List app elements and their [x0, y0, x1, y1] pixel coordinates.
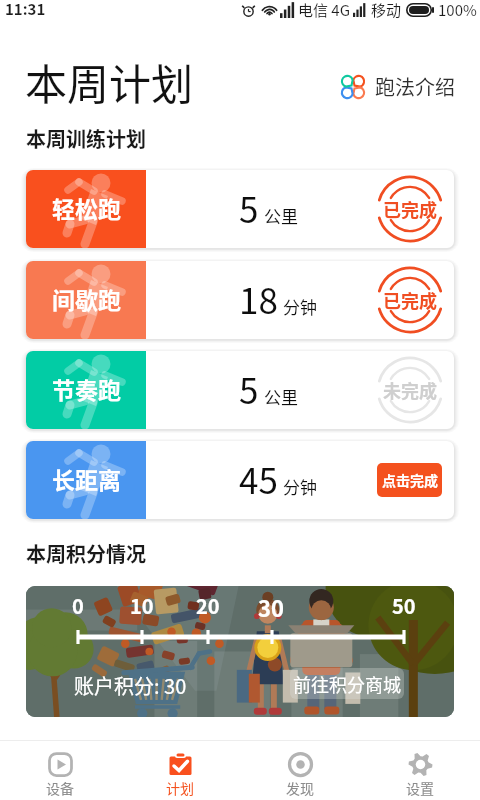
staticText: 分钟: [283, 474, 317, 499]
staticText: 计划: [166, 778, 194, 798]
staticText: 本周积分情况: [26, 539, 146, 568]
staticText: 轻松跑: [52, 191, 121, 224]
staticText: 公里: [264, 384, 298, 409]
button[interactable]: 跑法介绍: [339, 72, 455, 101]
staticText: 公里: [264, 203, 298, 228]
staticText: 间歇跑: [52, 282, 121, 315]
button[interactable]: 发现: [240, 741, 360, 800]
staticText: 分钟: [283, 294, 317, 319]
button[interactable]: 计划: [120, 741, 240, 800]
staticText: 节奏跑: [52, 372, 121, 405]
button[interactable]: 长距离: [26, 441, 454, 519]
staticText: 长距离: [52, 462, 121, 495]
staticText: 点击完成: [382, 470, 438, 490]
button[interactable]: 间歇跑: [26, 261, 454, 339]
staticText: 电信 4G: [298, 0, 351, 21]
staticText: 发现: [286, 778, 314, 798]
button[interactable]: 轻松跑: [26, 170, 454, 248]
staticText: 跑法介绍: [375, 72, 455, 101]
staticText: 前往积分商城: [293, 671, 401, 697]
staticText: 100%: [438, 0, 477, 21]
button[interactable]: 0: [26, 586, 454, 717]
staticText: 移动: [371, 0, 402, 21]
button[interactable]: 设备: [0, 741, 120, 800]
staticText: 已完成: [383, 196, 437, 222]
staticText: 本周计划: [25, 51, 194, 112]
staticText: 20: [196, 591, 220, 620]
staticText: 5: [239, 363, 259, 414]
staticText: 45: [239, 453, 278, 504]
staticText: 已完成: [383, 287, 437, 313]
staticText: 账户积分: 30: [74, 671, 187, 700]
staticText: 5: [239, 182, 259, 233]
staticText: 18: [239, 273, 278, 324]
staticText: 50: [392, 591, 416, 620]
staticText: 设置: [406, 778, 434, 798]
staticText: 11:31: [5, 0, 46, 20]
staticText: 0: [72, 591, 84, 620]
staticText: 未完成: [383, 377, 437, 403]
staticText: 设备: [46, 778, 74, 798]
staticText: 30: [258, 591, 284, 623]
button[interactable]: 设置: [360, 741, 480, 800]
button[interactable]: 前往积分商城: [290, 668, 404, 699]
staticText: 本周训练计划: [26, 124, 146, 153]
staticText: 10: [130, 591, 154, 620]
button[interactable]: 点击完成: [377, 463, 442, 497]
button[interactable]: 节奏跑: [26, 351, 454, 429]
